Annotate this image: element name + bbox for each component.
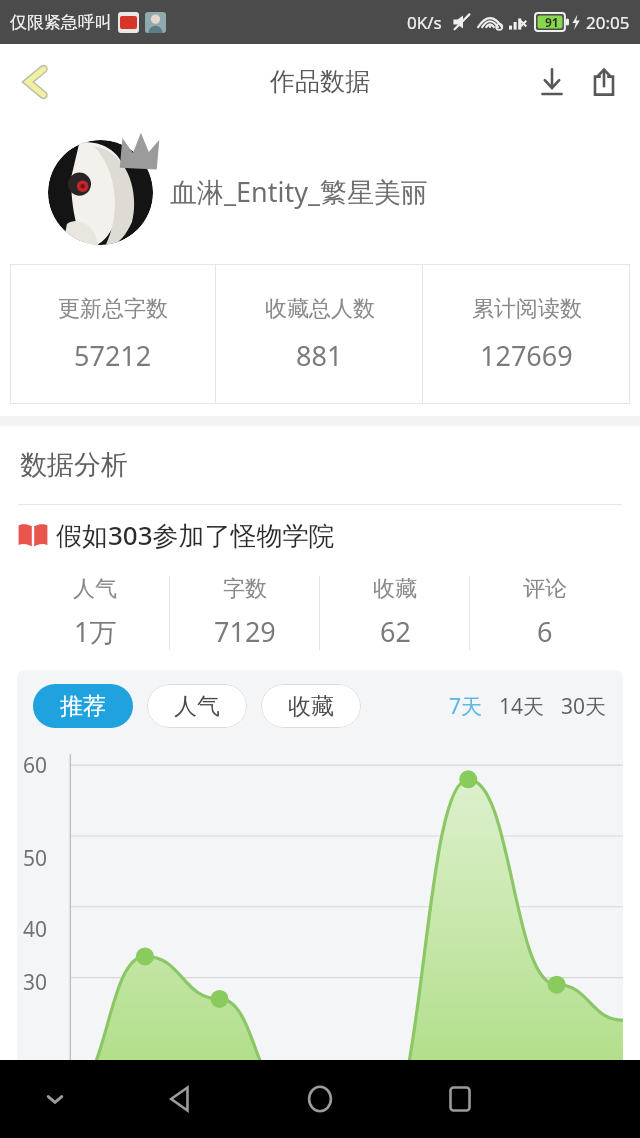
- staticText: 仅限紧急呼叫: [10, 12, 112, 33]
- button[interactable]: Hide keyboard: [0, 1060, 110, 1138]
- staticText: 14天: [499, 692, 545, 721]
- staticText: 1万: [74, 613, 117, 650]
- staticText: 推荐: [60, 692, 106, 721]
- staticText: 0K/s: [407, 11, 442, 34]
- staticText: 累计阅读数: [472, 295, 582, 323]
- staticText: 6: [537, 613, 553, 650]
- button[interactable]: Download: [526, 56, 578, 108]
- staticText: 作品数据: [270, 66, 370, 97]
- staticText: 50: [23, 844, 48, 873]
- button[interactable]: 30天: [559, 688, 609, 725]
- button[interactable]: 更新总字数: [10, 264, 216, 404]
- button[interactable]: 收藏: [320, 565, 470, 660]
- button[interactable]: 人气: [147, 684, 247, 728]
- staticText: 91: [545, 14, 559, 30]
- staticText: 7天: [449, 692, 483, 721]
- staticText: 57212: [74, 337, 152, 374]
- button[interactable]: 评论: [470, 565, 620, 660]
- button[interactable]: Recents: [390, 1060, 530, 1138]
- button[interactable]: 收藏: [261, 684, 361, 728]
- button[interactable]: 假如303参加了怪物学院: [0, 505, 640, 565]
- staticText: 60: [23, 751, 48, 780]
- staticText: 40: [23, 915, 48, 944]
- staticText: 人气: [174, 692, 220, 721]
- staticText: 30: [23, 968, 48, 997]
- button[interactable]: 收藏总人数: [216, 264, 423, 404]
- button[interactable]: Back: [8, 54, 64, 110]
- button[interactable]: 人气: [20, 565, 170, 660]
- staticText: 收藏: [373, 575, 417, 603]
- staticText: 881: [296, 337, 343, 374]
- staticText: 62: [380, 613, 411, 650]
- staticText: 假如303参加了怪物学院: [56, 517, 335, 553]
- staticText: 血淋_Entity_繁星美丽: [170, 173, 428, 210]
- staticText: 127669: [480, 337, 573, 374]
- staticText: 数据分析: [20, 448, 128, 482]
- staticText: 7129: [214, 613, 276, 650]
- staticText: 收藏总人数: [265, 295, 375, 323]
- staticText: 字数: [223, 575, 267, 603]
- staticText: 更新总字数: [58, 295, 168, 323]
- button[interactable]: Back: [110, 1060, 250, 1138]
- button[interactable]: 字数: [170, 565, 320, 660]
- button[interactable]: 累计阅读数: [423, 264, 630, 404]
- button[interactable]: Share: [578, 56, 630, 108]
- staticText: 人气: [73, 575, 117, 603]
- button[interactable]: 血淋_Entity_繁星美丽: [0, 119, 640, 264]
- button[interactable]: 14天: [497, 688, 547, 725]
- staticText: 30天: [561, 692, 607, 721]
- staticText: 收藏: [288, 692, 334, 721]
- staticText: 评论: [523, 575, 567, 603]
- button[interactable]: 7天: [447, 688, 485, 725]
- button[interactable]: Home: [250, 1060, 390, 1138]
- staticText: 20:05: [586, 11, 630, 34]
- button[interactable]: 推荐: [33, 684, 133, 728]
